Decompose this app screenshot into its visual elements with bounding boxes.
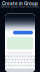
staticText: Share your live location <box>1 5 39 8</box>
staticText: Create in Group <box>2 1 38 6</box>
